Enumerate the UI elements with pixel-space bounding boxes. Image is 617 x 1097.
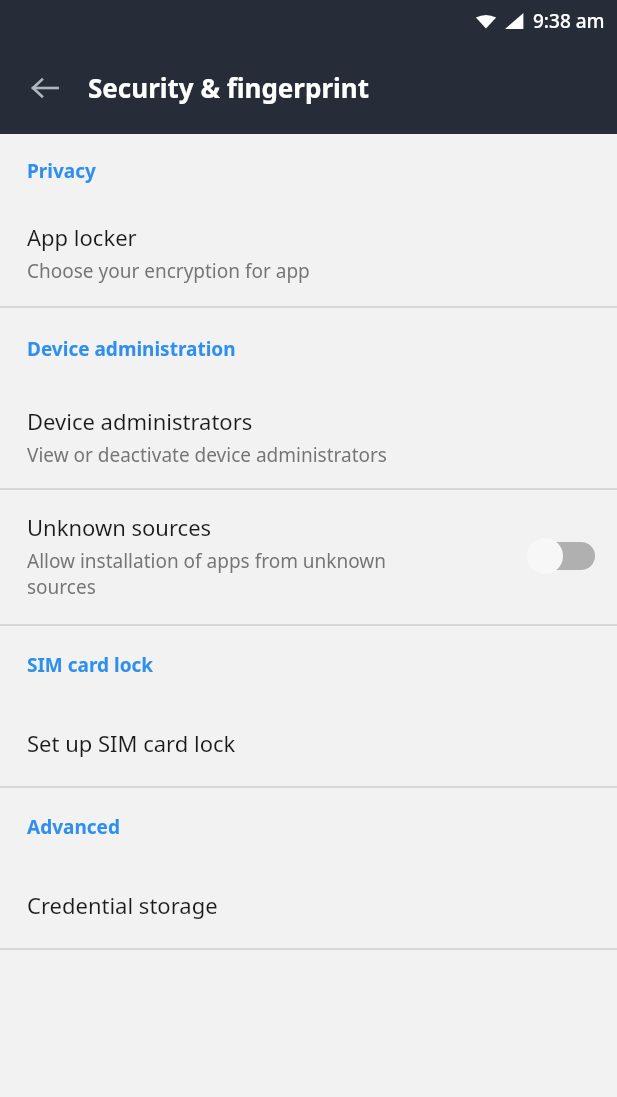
- button[interactable]: Set up SIM card lock: [0, 678, 617, 786]
- staticText: Device administration: [27, 336, 236, 362]
- staticText: Security & fingerprint: [88, 70, 370, 105]
- staticText: 9:38 am: [533, 8, 605, 34]
- button[interactable]: Credential storage: [0, 840, 617, 948]
- staticText: Choose your encryption for app: [27, 258, 310, 284]
- staticText: Credential storage: [27, 890, 218, 920]
- staticText: Privacy: [27, 158, 96, 184]
- button[interactable]: Device administrators: [0, 362, 617, 488]
- staticText: Advanced: [27, 814, 120, 840]
- staticText: Allow installation of apps from unknown …: [27, 548, 387, 600]
- staticText: View or deactivate device administrators: [27, 442, 387, 468]
- staticText: Set up SIM card lock: [27, 728, 236, 758]
- staticText: SIM card lock: [27, 652, 154, 678]
- staticText: App locker: [27, 222, 137, 252]
- staticText: Device administrators: [27, 406, 253, 436]
- button[interactable]: App locker: [0, 184, 617, 306]
- staticText: Unknown sources: [27, 512, 212, 542]
- button[interactable]: Unknown sources: [0, 490, 617, 624]
- button[interactable]: Back: [18, 61, 72, 115]
- button[interactable]: Unknown sources toggle: [527, 534, 597, 578]
